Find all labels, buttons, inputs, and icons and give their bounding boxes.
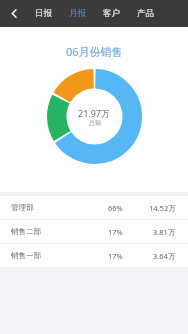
button[interactable]: 日报 (33, 0, 54, 27)
staticText: 管理部 (11, 203, 34, 212)
staticText: 销售二部 (11, 227, 41, 236)
staticText: 客户 (103, 8, 120, 19)
staticText: 14.52万 (149, 203, 176, 213)
staticText: 日报 (35, 8, 52, 19)
button[interactable]: 客户 (101, 0, 122, 27)
button[interactable]: 销售一部 (0, 244, 188, 267)
staticText: 月报 (69, 8, 86, 19)
staticText: 产品 (137, 8, 154, 19)
staticText: 17% (108, 251, 123, 261)
button[interactable]: 产品 (135, 0, 156, 27)
staticText: 3.64万 (153, 251, 176, 261)
staticText: 销售一部 (11, 251, 41, 260)
button[interactable]: 销售二部 (0, 220, 188, 243)
staticText: 06月份销售 (66, 44, 123, 59)
button[interactable]: Back (0, 0, 28, 27)
button[interactable]: 月报 (67, 0, 88, 27)
staticText: 21.97万 (78, 107, 111, 119)
staticText: 总额 (89, 119, 101, 127)
button[interactable]: 管理部 (0, 196, 188, 219)
staticText: 17% (108, 227, 123, 237)
staticText: 66% (108, 203, 123, 213)
staticText: 3.81万 (153, 227, 176, 237)
